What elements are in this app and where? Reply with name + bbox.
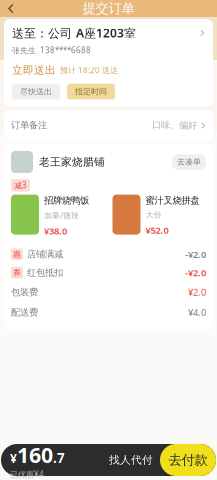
- staticText: 老王家烧腊铺: [39, 155, 105, 168]
- button[interactable]: 找人代付: [102, 444, 160, 476]
- button[interactable]: 老王家烧腊铺: [4, 144, 213, 179]
- staticText: 惠: [13, 249, 21, 259]
- staticText: ¥2.0: [188, 286, 206, 298]
- staticText: 店铺满减: [27, 248, 63, 260]
- staticText: 160: [17, 440, 53, 469]
- staticText: ¥52.0: [145, 224, 168, 236]
- staticText: 包装费: [11, 286, 38, 298]
- staticText: 立即送出: [12, 64, 56, 77]
- button[interactable]: 指定时间: [67, 84, 115, 99]
- staticText: ¥38.0: [44, 225, 67, 237]
- staticText: 尽快送出: [20, 87, 52, 96]
- staticText: 送至：公司 A座1203室: [12, 25, 136, 41]
- staticText: 招牌烧鸭饭: [44, 195, 89, 206]
- staticText: -¥2.0: [185, 266, 206, 279]
- staticText: 大份: [145, 210, 161, 220]
- staticText: .7: [53, 449, 65, 467]
- staticText: 去凑单: [177, 157, 201, 167]
- staticText: ¥4.0: [188, 306, 206, 319]
- staticText: 券: [13, 268, 21, 277]
- staticText: 去付款: [168, 452, 207, 468]
- staticText: ¥: [10, 450, 17, 466]
- button[interactable]: 去付款: [160, 444, 216, 476]
- button[interactable]: 返回: [3, 0, 18, 17]
- staticText: 配送费: [11, 307, 38, 318]
- staticText: 蜜汁叉烧拼盘: [145, 195, 199, 206]
- button[interactable]: 订单备注: [4, 110, 213, 140]
- staticText: 红包抵扣: [27, 267, 63, 278]
- staticText: 预计 18:20 送达: [60, 65, 118, 75]
- staticText: 减3: [14, 180, 27, 191]
- staticText: 找人代付: [109, 453, 153, 466]
- staticText: 口味、偏好: [152, 119, 197, 131]
- staticText: 张先生 138****6688: [12, 45, 91, 55]
- button[interactable]: 尽快送出: [12, 84, 60, 99]
- staticText: 已优惠¥4: [10, 469, 44, 479]
- staticText: 订单备注: [11, 119, 47, 131]
- staticText: 指定时间: [75, 87, 107, 96]
- staticText: 加量/微辣: [44, 210, 79, 221]
- button[interactable]: 送至：公司 A座1203室: [4, 19, 213, 62]
- staticText: -¥2.0: [185, 248, 206, 260]
- staticText: 提交订单: [82, 0, 134, 17]
